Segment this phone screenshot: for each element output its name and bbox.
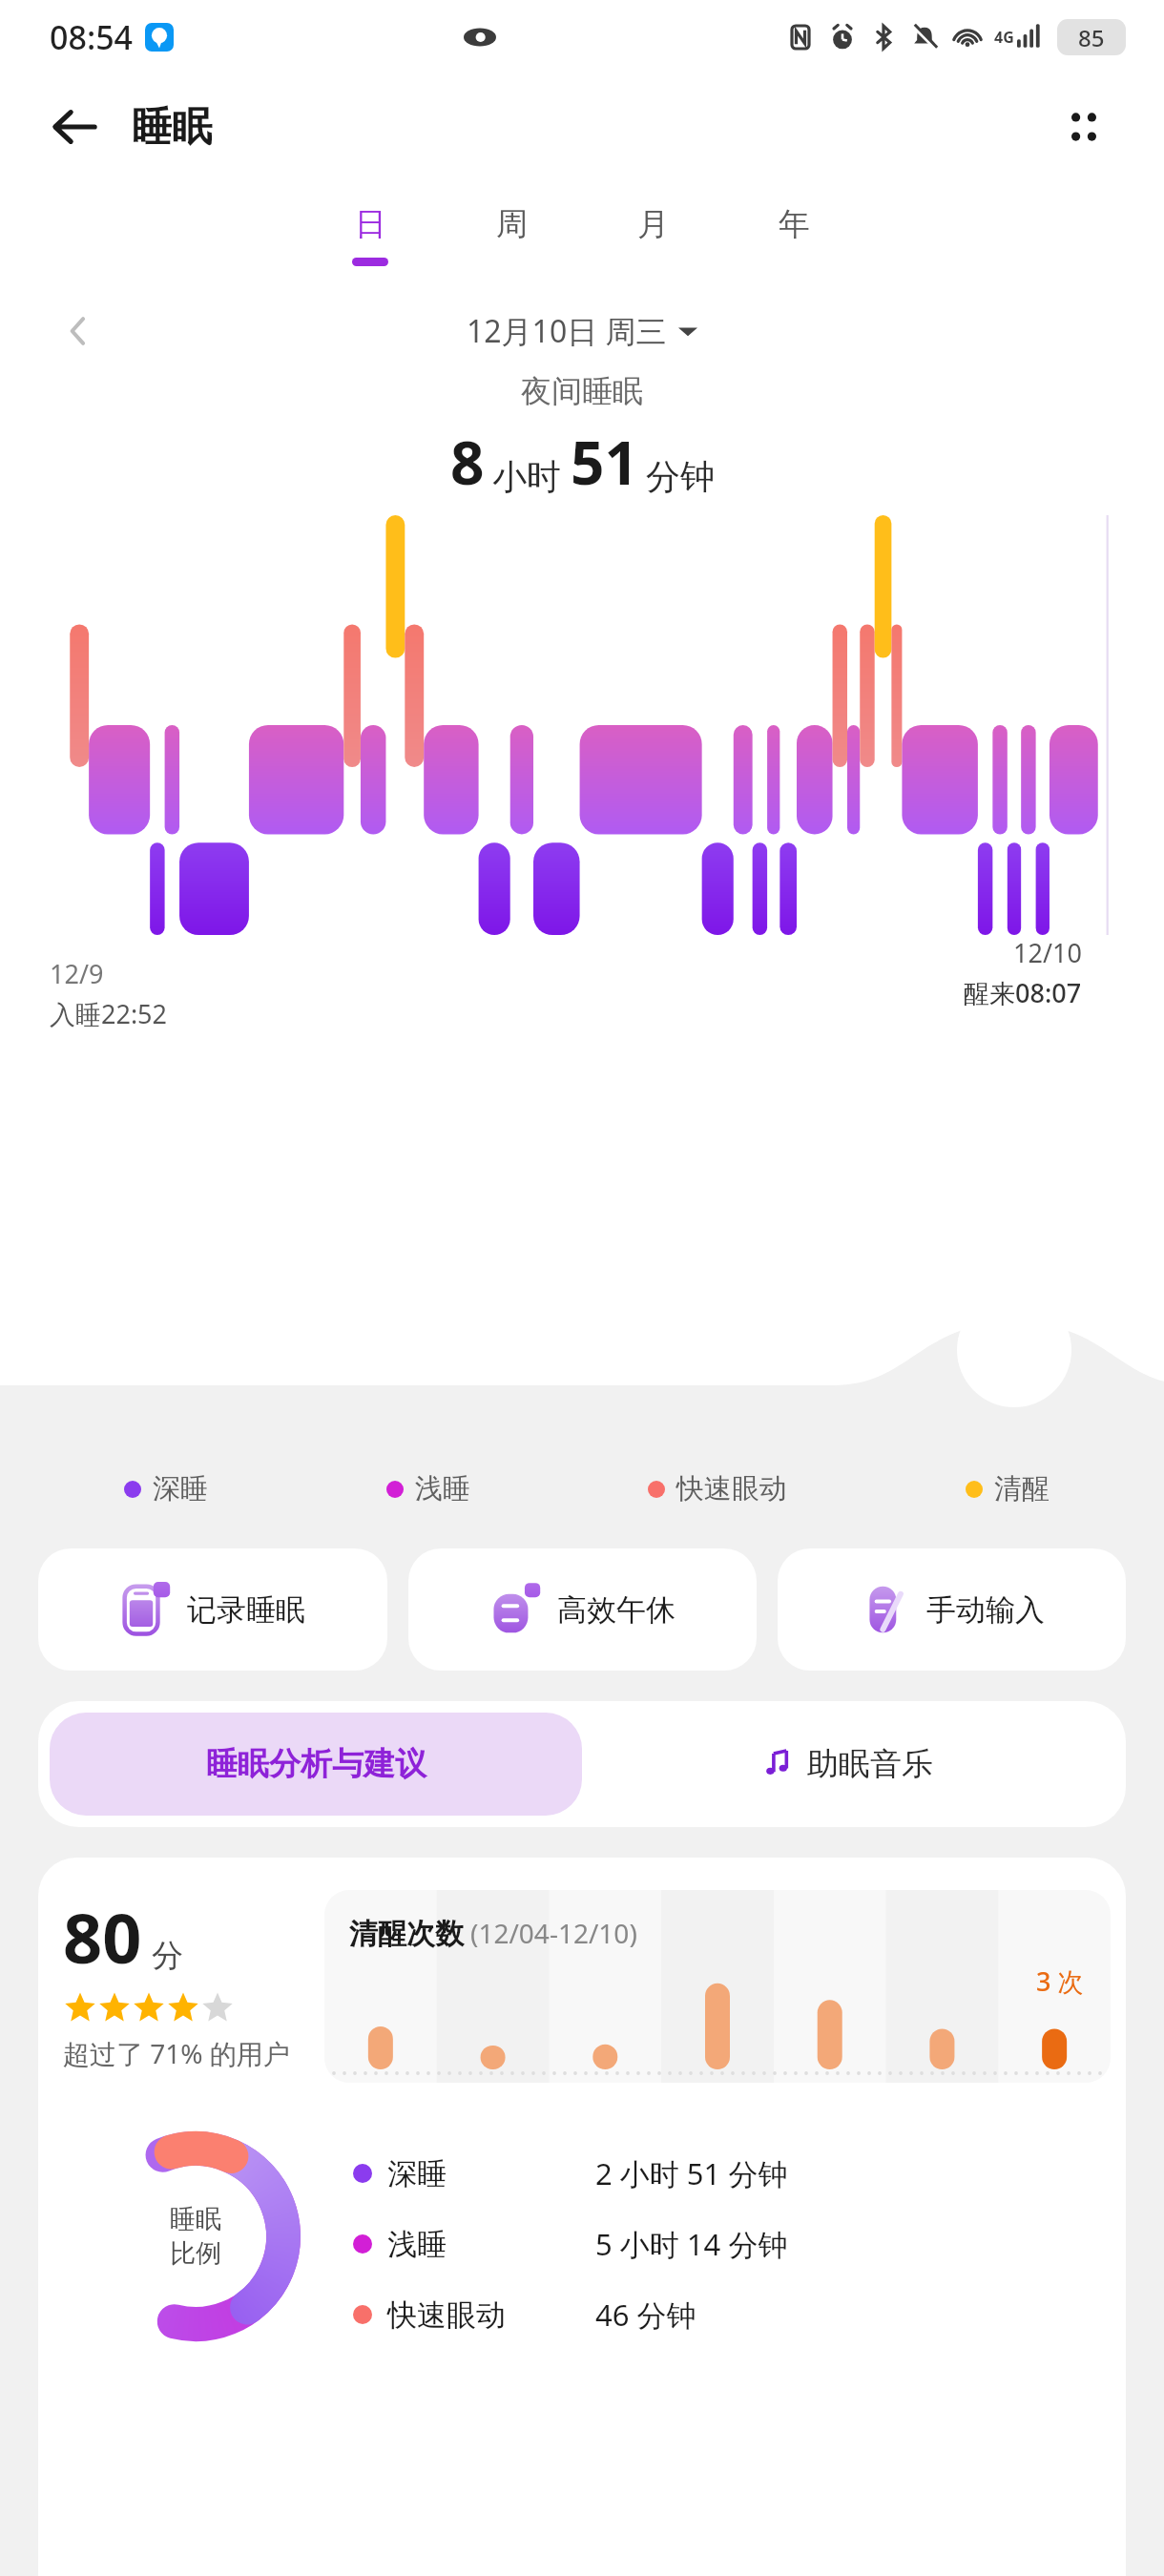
- staticText: 夜间睡眠: [521, 372, 643, 410]
- staticText: 12/9: [50, 956, 104, 991]
- staticText: 80: [63, 1890, 142, 1984]
- staticText: 月: [637, 204, 669, 244]
- staticText: 5 小时 14 分钟: [595, 2224, 788, 2264]
- staticText: 浅睡: [415, 1471, 470, 1506]
- staticText: 4G: [994, 27, 1014, 48]
- button[interactable]: 助眠音乐: [582, 1713, 1114, 1816]
- staticText: 小时: [492, 455, 561, 498]
- staticText: 周: [496, 204, 528, 244]
- button[interactable]: 月: [582, 179, 723, 290]
- staticText: 3 次: [1036, 1963, 1084, 1999]
- staticText: 比例: [170, 2237, 221, 2270]
- staticText: 睡眠: [132, 102, 212, 153]
- staticText: 入睡22:52: [50, 996, 168, 1031]
- staticText: 手动输入: [926, 1591, 1045, 1629]
- staticText: 年: [779, 204, 810, 244]
- button[interactable]: 高效午休: [408, 1548, 757, 1671]
- staticText: 85: [1078, 22, 1105, 53]
- button[interactable]: 12月10日 周三: [467, 310, 697, 352]
- staticText: 深睡: [153, 1471, 208, 1506]
- staticText: 睡眠: [170, 2203, 221, 2235]
- staticText: 08:54: [50, 15, 134, 59]
- staticText: 睡眠分析与建议: [206, 1744, 426, 1784]
- staticText: 醒来08:07: [964, 975, 1082, 1010]
- staticText: 超过了 71% 的用户: [63, 2035, 290, 2071]
- staticText: 2 小时 51 分钟: [595, 2153, 788, 2193]
- button[interactable]: 年: [723, 179, 864, 290]
- button[interactable]: 手动输入: [778, 1548, 1126, 1671]
- staticText: 助眠音乐: [807, 1744, 933, 1784]
- staticText: 清醒次数: [349, 1916, 464, 1952]
- staticText: 12/10: [1013, 935, 1082, 970]
- button[interactable]: 前一天: [50, 302, 107, 360]
- staticText: 12月10日 周三: [467, 310, 667, 352]
- button[interactable]: 记录睡眠: [38, 1548, 387, 1671]
- staticText: 高效午休: [557, 1591, 676, 1629]
- button[interactable]: 更多选项: [1048, 91, 1120, 163]
- button[interactable]: 睡眠分析与建议: [50, 1713, 582, 1816]
- staticText: 分钟: [646, 455, 715, 498]
- staticText: 分: [152, 1936, 183, 1976]
- staticText: 51: [571, 422, 638, 502]
- button[interactable]: 日: [300, 179, 441, 290]
- staticText: (12/04-12/10): [470, 1915, 637, 1951]
- staticText: 深睡: [387, 2155, 595, 2192]
- staticText: 快速眼动: [387, 2296, 595, 2334]
- button[interactable]: 返回: [38, 91, 111, 163]
- staticText: 46 分钟: [595, 2295, 696, 2335]
- button[interactable]: 快速眼动: [353, 2295, 1107, 2335]
- staticText: 清醒: [994, 1471, 1050, 1506]
- staticText: 快速眼动: [676, 1471, 787, 1506]
- staticText: 浅睡: [387, 2226, 595, 2263]
- staticText: 日: [355, 204, 386, 244]
- button[interactable]: 周: [441, 179, 582, 290]
- button[interactable]: 浅睡: [353, 2224, 1107, 2264]
- staticText: 记录睡眠: [187, 1591, 305, 1629]
- button[interactable]: 深睡: [353, 2153, 1107, 2193]
- staticText: 8: [450, 422, 485, 502]
